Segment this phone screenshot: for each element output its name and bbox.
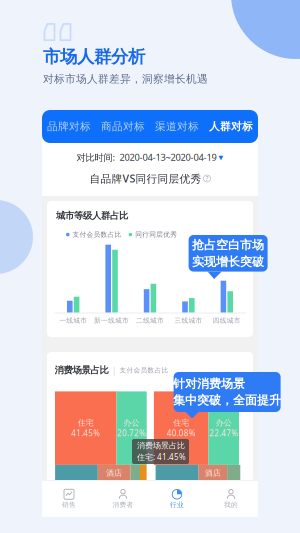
staticText: 针对消费场景 [173, 376, 245, 391]
staticText: 办公 [124, 418, 140, 428]
staticText: 品牌对标 [47, 120, 91, 133]
button[interactable]: 品牌对标 [42, 110, 96, 143]
staticText: 消费场景占比 [137, 441, 185, 451]
staticText: 22.47% [209, 428, 238, 438]
staticText: 抢占空白市场 [192, 238, 264, 252]
button[interactable]: 消费者 [96, 481, 150, 517]
staticText: 41.45% [71, 428, 100, 438]
staticText: 住宅: 41.45% [137, 452, 186, 462]
staticText: 我的 [224, 501, 238, 509]
staticText: 四线城市 [213, 316, 241, 325]
staticText: 办公 [216, 418, 232, 428]
staticText: 支付会员数占比 [73, 230, 122, 239]
staticText: 集中突破，全面提升 [173, 393, 281, 408]
staticText: 二线城市 [136, 316, 164, 325]
staticText: 支付会员数占比 [119, 366, 168, 374]
staticText: 20.72% [117, 428, 146, 438]
staticText: 40.08% [167, 428, 196, 438]
staticText: 行业 [170, 501, 184, 509]
staticText: 市场人群分析 [43, 46, 145, 67]
button[interactable]: 人群对标 [204, 110, 258, 143]
staticText: 住宅 [173, 418, 189, 428]
staticText: 一线城市 [59, 316, 87, 325]
button[interactable]: 销售 [42, 481, 96, 517]
staticText: 同行同层优秀 [135, 230, 177, 239]
staticText: 2020-04-13~2020-04-19 [119, 151, 218, 163]
staticText: 酒店 [205, 468, 221, 478]
button[interactable]: 行业 [150, 481, 204, 517]
staticText: 三线城市 [174, 316, 202, 325]
button[interactable]: 渠道对标 [150, 110, 204, 143]
staticText: ▾ [218, 152, 223, 162]
staticText: 住宅 [78, 418, 94, 428]
staticText: ? [205, 174, 208, 183]
staticText: | [111, 364, 116, 376]
button[interactable]: 我的 [204, 481, 258, 517]
staticText: 实现增长突破 [192, 254, 264, 269]
staticText: 渠道对标 [155, 120, 199, 133]
staticText: 对标市场人群差异，洞察增长机遇 [43, 72, 208, 85]
button[interactable]: 商品对标 [96, 110, 150, 143]
staticText: 销售 [62, 501, 76, 509]
staticText: 城市等级人群占比 [56, 210, 128, 221]
button[interactable]: 对比时间: [76, 151, 223, 163]
staticText: 酒店 [106, 468, 122, 478]
staticText: 新一线城市 [94, 316, 129, 325]
staticText: 人群对标 [209, 120, 253, 133]
staticText: 商品对标 [101, 120, 145, 133]
staticText: 消费场景占比 [54, 364, 108, 376]
staticText: 消费者 [112, 501, 133, 509]
staticText: 对比时间: [76, 151, 119, 163]
staticText: 自品牌VS同行同层优秀 [89, 171, 201, 186]
